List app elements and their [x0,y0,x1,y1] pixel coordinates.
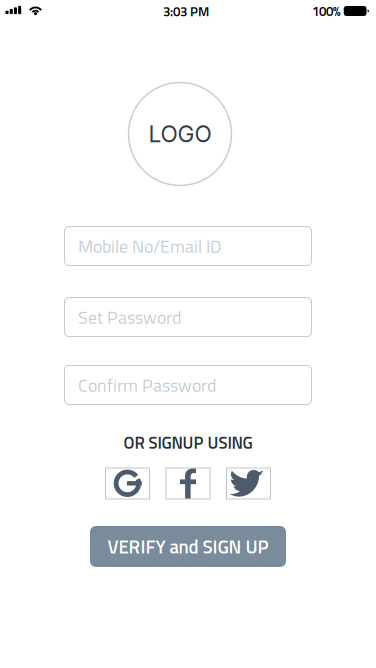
button[interactable]: VERIFY and SIGN UP [90,526,286,567]
button[interactable]: Mobile No/Email ID [64,226,312,266]
button[interactable]: Sign up with Twitter [226,467,271,499]
staticText: OR SIGNUP USING [123,430,252,455]
staticText: Set Password [78,303,181,331]
staticText: 3:03 PM [163,1,209,21]
staticText: LOGO [148,120,211,148]
staticText: VERIFY and SIGN UP [107,532,268,561]
staticText: Confirm Password [78,371,216,399]
button[interactable]: Sign up with Facebook [165,467,210,499]
button[interactable]: Sign up with Google [105,467,150,499]
staticText: 100% [312,1,340,21]
button[interactable]: Confirm Password [64,365,312,405]
staticText: Mobile No/Email ID [78,232,222,260]
button[interactable]: Set Password [64,297,312,337]
